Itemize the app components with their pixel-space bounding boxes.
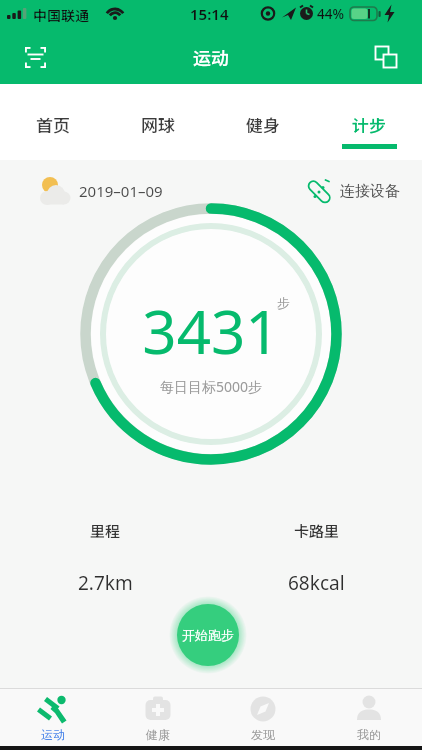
staticText: 3431	[0, 290, 422, 372]
staticText: 15:14	[190, 4, 229, 24]
staticText: 运动	[193, 44, 229, 70]
staticText: 步	[277, 295, 290, 311]
staticText: 开始跑步	[182, 627, 234, 643]
staticText: 2.7km	[78, 570, 133, 596]
button[interactable]: 首页	[0, 84, 105, 160]
button[interactable]: 健身	[210, 84, 316, 160]
button[interactable]: 我的	[316, 689, 422, 750]
staticText: 卡路里	[294, 520, 340, 542]
staticText: 每日目标5000步	[0, 377, 422, 396]
staticText: 计步	[352, 112, 386, 137]
staticText: 健康	[146, 727, 170, 742]
button[interactable]: 计步	[316, 84, 422, 160]
staticText: 网球	[141, 112, 175, 137]
button[interactable]: 网球	[105, 84, 210, 160]
button[interactable]: 开始跑步	[177, 604, 239, 666]
staticText: 运动	[41, 727, 65, 742]
button[interactable]: 健康	[105, 689, 210, 750]
staticText: 我的	[357, 727, 381, 742]
button[interactable]	[15, 37, 55, 77]
button[interactable]	[366, 37, 406, 77]
button[interactable]: 连接设备	[305, 177, 400, 205]
staticText: 44%	[317, 5, 344, 23]
button[interactable]: 运动	[0, 689, 105, 750]
staticText: 中国联通	[33, 5, 89, 25]
staticText: 2019–01–09	[79, 181, 163, 201]
staticText: 68kcal	[288, 570, 345, 596]
staticText: 连接设备	[340, 182, 400, 201]
staticText: 发现	[251, 727, 275, 742]
staticText: 健身	[246, 112, 280, 137]
button[interactable]: 发现	[210, 689, 316, 750]
staticText: 里程	[90, 520, 121, 542]
staticText: 首页	[36, 112, 70, 137]
